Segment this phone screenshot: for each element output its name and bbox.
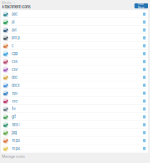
button[interactable]: gif	[1, 113, 148, 121]
staticText: avi	[11, 27, 16, 32]
staticText: c	[11, 43, 13, 48]
button[interactable]: bmp	[1, 34, 148, 42]
staticText: cpp	[11, 51, 17, 56]
staticText: eps	[11, 91, 17, 95]
staticText: html	[11, 122, 19, 127]
button[interactable]: aac	[1, 10, 148, 18]
staticText: bmp	[11, 35, 19, 40]
button[interactable]: csv	[1, 65, 148, 73]
staticText: Manage icons	[2, 154, 25, 158]
button[interactable]: docx	[1, 81, 148, 89]
button[interactable]: jpg	[1, 129, 148, 137]
staticText: doc	[11, 75, 17, 80]
staticText: csv	[11, 67, 17, 72]
button[interactable]: ai	[1, 18, 148, 26]
button[interactable]: mp4	[1, 144, 148, 152]
button[interactable]: eps	[1, 89, 148, 97]
button[interactable]: cpp	[1, 50, 148, 58]
staticText: gif	[11, 114, 15, 119]
button[interactable]: html	[1, 121, 148, 129]
staticText: mp3	[11, 138, 19, 143]
staticText: Attachment icons	[1, 5, 30, 9]
button[interactable]: css	[1, 58, 148, 65]
button[interactable]: doc	[1, 73, 148, 81]
staticText: mp4	[11, 146, 20, 151]
button[interactable]: avi	[1, 26, 148, 34]
button[interactable]: Add New	[134, 3, 148, 8]
staticText: docx	[11, 83, 19, 88]
staticText: Media ›	[1, 1, 14, 5]
button[interactable]: exe	[1, 97, 148, 105]
staticText: exe	[11, 99, 17, 103]
staticText: css	[11, 59, 17, 64]
staticText: flv	[11, 106, 15, 111]
staticText: jpg	[11, 130, 16, 135]
button[interactable]: mp3	[1, 137, 148, 144]
button[interactable]: c	[1, 42, 148, 50]
staticText: ai	[11, 20, 14, 24]
button[interactable]: flv	[1, 105, 148, 113]
staticText: Add New	[138, 2, 145, 9]
staticText: aac	[11, 12, 17, 16]
